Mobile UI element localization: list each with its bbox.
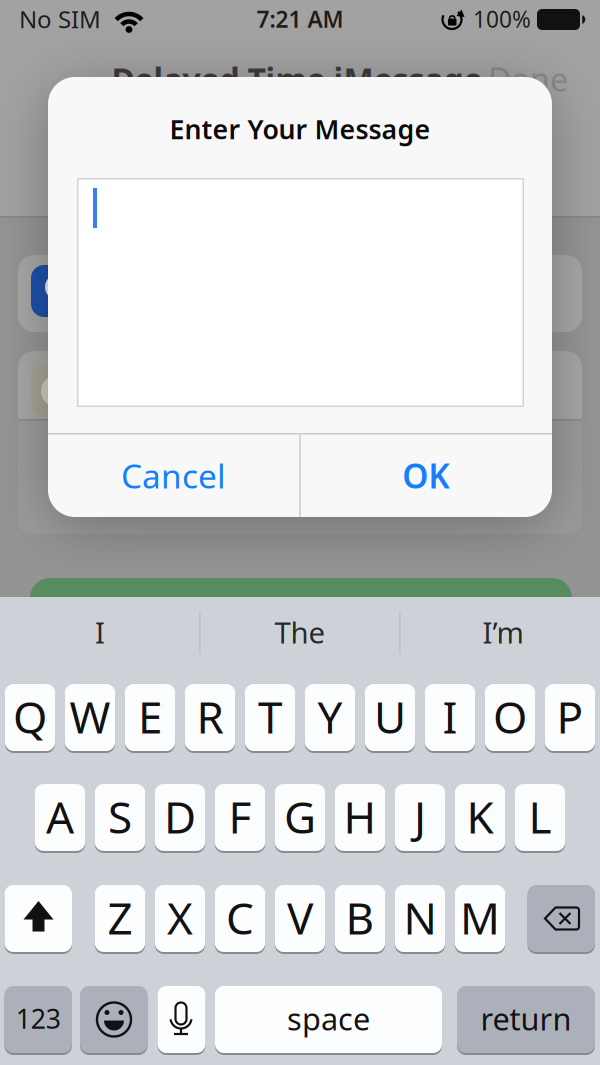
button[interactable]: Done (480, 57, 576, 101)
button[interactable]: Done (30, 578, 572, 618)
staticText: Done (488, 58, 568, 100)
staticText: No SIM (19, 3, 101, 35)
staticText: G (284, 787, 316, 846)
button[interactable]: 123 (4, 986, 72, 1053)
staticText: return (480, 998, 571, 1039)
button[interactable]: F (215, 784, 265, 851)
button[interactable]: J (395, 784, 445, 851)
button[interactable]: H (335, 784, 385, 851)
staticText: W (69, 687, 110, 746)
staticText: Y (317, 687, 342, 746)
staticText: V (287, 888, 313, 947)
staticText: R (196, 687, 223, 746)
staticText: K (466, 787, 493, 846)
staticText: J (414, 787, 426, 846)
staticText: I (442, 687, 457, 746)
staticText: Enter Your Message (169, 111, 430, 147)
button[interactable]: OK (301, 434, 551, 516)
button[interactable]: U (365, 684, 415, 751)
button[interactable]: S (95, 784, 145, 851)
staticText: N (403, 888, 436, 947)
staticText: Cancel (121, 453, 226, 498)
button[interactable]: O (485, 684, 535, 751)
staticText: 100% (473, 4, 531, 34)
button[interactable]: M (455, 885, 505, 952)
button[interactable]: Delete (527, 885, 595, 952)
staticText: B (345, 888, 374, 947)
staticText: X (167, 888, 193, 947)
staticText: U (374, 687, 406, 746)
staticText: Delayed Time iMessage (111, 58, 482, 100)
button[interactable]: I’m (408, 604, 598, 660)
staticText: The (274, 612, 325, 651)
staticText: P (556, 687, 583, 746)
staticText: H (343, 787, 376, 846)
button[interactable]: X (155, 885, 205, 952)
staticText: 123 (16, 1001, 61, 1036)
staticText: I (95, 612, 105, 651)
button[interactable]: space (215, 986, 442, 1053)
button[interactable]: C (215, 885, 265, 952)
staticText: D (164, 787, 196, 846)
button[interactable]: Dictate (157, 986, 205, 1053)
button[interactable]: L (515, 784, 565, 851)
staticText: A (46, 787, 74, 846)
staticText: O (493, 687, 527, 746)
button[interactable]: Z (95, 885, 145, 952)
button[interactable]: K (455, 784, 505, 851)
staticText: L (528, 787, 551, 846)
staticText: I’m (482, 612, 523, 651)
button[interactable]: D (155, 784, 205, 851)
staticText: Q (13, 687, 47, 746)
button[interactable]: I (425, 684, 475, 751)
button[interactable]: Shift (4, 885, 72, 952)
staticText: Z (107, 888, 132, 947)
button[interactable]: Cancel (48, 434, 298, 516)
button[interactable]: Q (5, 684, 55, 751)
button[interactable]: return (457, 986, 595, 1053)
button[interactable]: E (125, 684, 175, 751)
button[interactable]: Y (305, 684, 355, 751)
button[interactable]: N (395, 885, 445, 952)
staticText: space (287, 998, 370, 1039)
staticText: S (108, 787, 132, 846)
button[interactable]: B (335, 885, 385, 952)
button[interactable]: R (185, 684, 235, 751)
button[interactable]: Emoji (80, 986, 147, 1053)
button[interactable]: G (275, 784, 325, 851)
staticText: OK (402, 453, 450, 498)
button[interactable]: The (205, 604, 395, 660)
button[interactable]: A (35, 784, 85, 851)
button[interactable]: I (5, 604, 195, 660)
button[interactable]: V (275, 885, 325, 952)
button[interactable]: T (245, 684, 295, 751)
staticText: C (226, 888, 254, 947)
staticText: E (138, 687, 162, 746)
button[interactable]: W (65, 684, 115, 751)
staticText: 7:21 AM (256, 4, 343, 34)
staticText: M (460, 888, 500, 947)
staticText: T (258, 687, 282, 746)
button[interactable]: P (545, 684, 595, 751)
staticText: F (228, 787, 251, 846)
